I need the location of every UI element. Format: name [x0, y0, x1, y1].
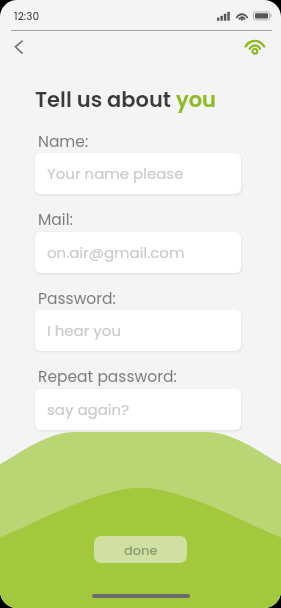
staticText: Repeat password:: [38, 366, 177, 388]
staticText: Name:: [38, 131, 89, 153]
staticText: done: [124, 541, 158, 559]
staticText: 12:30: [14, 9, 40, 24]
staticText: Your name please: [47, 163, 184, 184]
button[interactable]: Back: [3, 31, 35, 63]
button[interactable]: Wifi: [240, 36, 270, 66]
staticText: say again?: [47, 399, 129, 420]
button[interactable]: I hear you: [35, 310, 241, 351]
staticText: Tell us about you: [35, 85, 216, 114]
button[interactable]: done: [94, 536, 187, 563]
staticText: on.air@gmail.com: [47, 242, 185, 263]
staticText: I hear you: [47, 320, 121, 341]
button[interactable]: say again?: [35, 389, 241, 430]
button[interactable]: Your name please: [35, 153, 241, 194]
button[interactable]: on.air@gmail.com: [35, 232, 241, 273]
staticText: Password:: [38, 288, 116, 310]
staticText: Mail:: [38, 209, 73, 231]
